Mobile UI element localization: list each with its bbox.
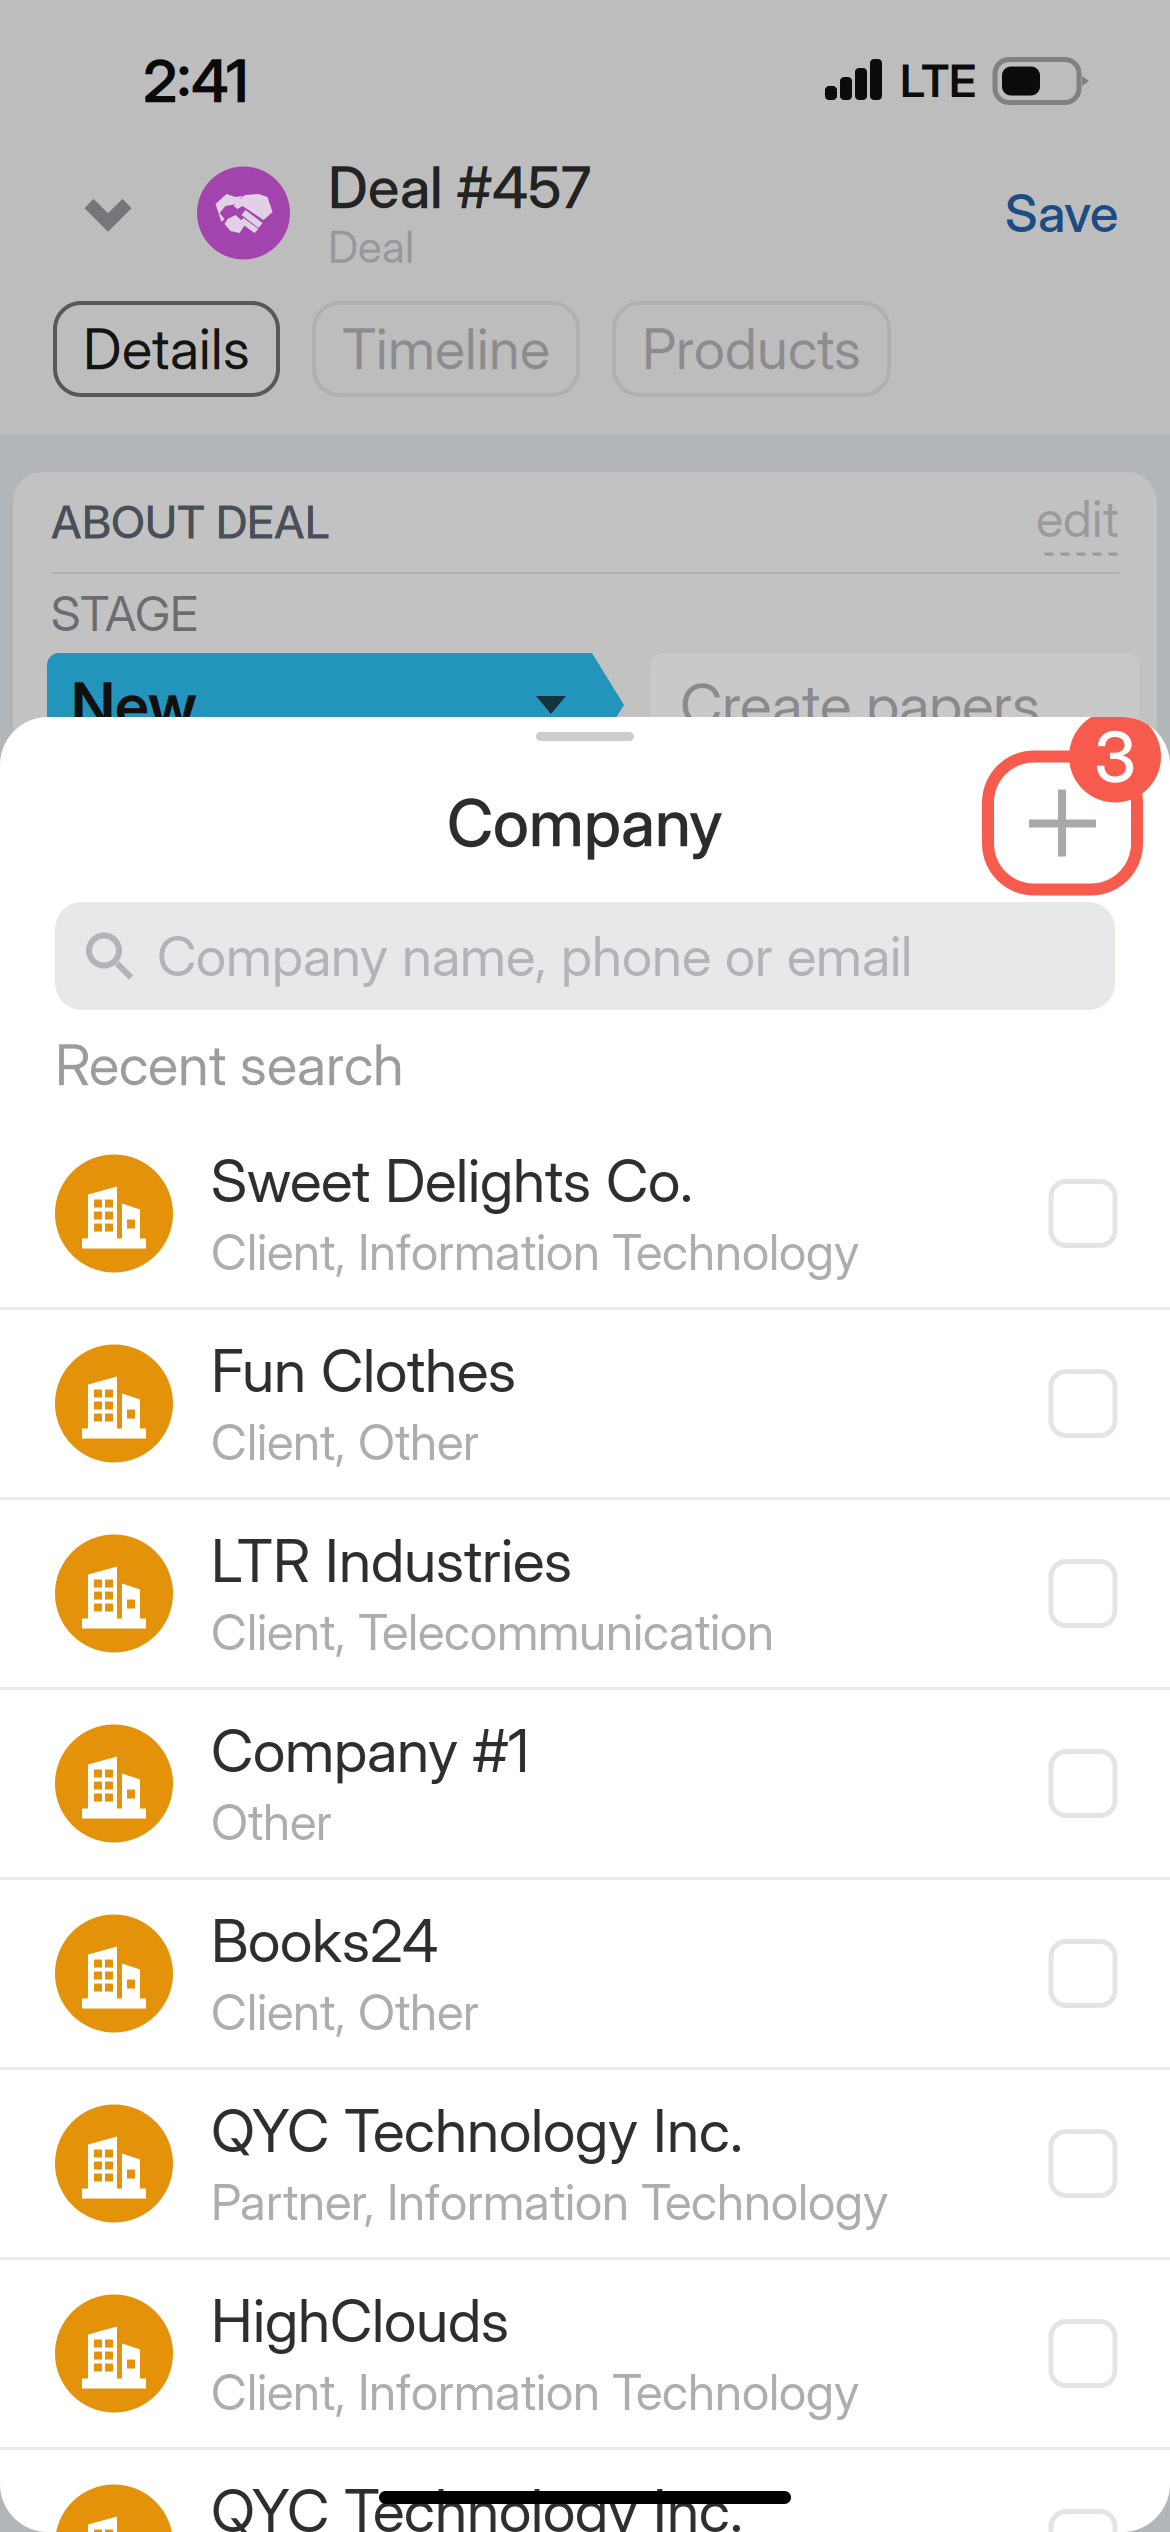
staticText: Create papers bbox=[680, 669, 1040, 740]
staticText: Books24 bbox=[211, 1905, 438, 1976]
button[interactable]: HighClouds bbox=[0, 2260, 1170, 2447]
staticText: Fun Clothes bbox=[211, 1335, 516, 1406]
staticText: Partner, Information Technology bbox=[211, 2172, 888, 2232]
staticText: Recent search bbox=[55, 1031, 404, 1099]
button[interactable]: LTR Industries bbox=[0, 1500, 1170, 1687]
staticText: Company #1 bbox=[211, 1715, 529, 1786]
staticText: LTR Industries bbox=[211, 1525, 572, 1596]
button[interactable]: Add company bbox=[982, 750, 1143, 895]
staticText: Timeline bbox=[342, 315, 550, 383]
button[interactable]: Sweet Delights Co. bbox=[0, 1120, 1170, 1307]
button[interactable]: Create papers bbox=[650, 653, 1139, 757]
staticText: QYC Technology Inc. bbox=[211, 2475, 743, 2532]
button[interactable]: Timeline bbox=[312, 301, 580, 397]
staticText: QYC Technology Inc. bbox=[211, 2095, 743, 2166]
staticText: HighClouds bbox=[211, 2285, 509, 2356]
button[interactable]: Company #1 bbox=[0, 1690, 1170, 1877]
button[interactable]: Products bbox=[612, 301, 891, 397]
staticText: Client, Information Technology bbox=[211, 2362, 859, 2422]
button[interactable]: Details bbox=[53, 301, 280, 397]
staticText: Save bbox=[1005, 181, 1118, 244]
button[interactable]: Books24 bbox=[0, 1880, 1170, 2067]
staticText: Sweet Delights Co. bbox=[211, 1145, 693, 1216]
button[interactable]: QYC Technology Inc. bbox=[0, 2450, 1170, 2532]
staticText: STAGE bbox=[51, 584, 198, 643]
button[interactable]: edit bbox=[1036, 488, 1119, 556]
button[interactable]: Collapse bbox=[0, 196, 134, 229]
button[interactable]: Company name, phone or email bbox=[55, 902, 1115, 1010]
staticText: Other bbox=[211, 1792, 332, 1852]
button[interactable]: Save bbox=[1005, 181, 1170, 244]
staticText: Client, Other bbox=[211, 1982, 479, 2042]
staticText: Client, Information Technology bbox=[211, 1222, 859, 1282]
staticText: 2:41 bbox=[143, 45, 248, 116]
staticText: Company bbox=[447, 784, 723, 862]
staticText: Products bbox=[642, 315, 861, 383]
button[interactable]: QYC Technology Inc. bbox=[0, 2070, 1170, 2257]
button[interactable]: New bbox=[47, 653, 624, 757]
staticText: LTE bbox=[900, 54, 976, 108]
button[interactable]: Fun Clothes bbox=[0, 1310, 1170, 1497]
staticText: Details bbox=[83, 315, 250, 383]
staticText: ABOUT DEAL bbox=[51, 495, 330, 549]
staticText: New bbox=[71, 668, 197, 742]
staticText: Deal bbox=[328, 220, 414, 273]
staticText: Client, Other bbox=[211, 1412, 479, 1472]
staticText: 3 bbox=[1094, 715, 1136, 798]
staticText: Company name, phone or email bbox=[157, 923, 912, 989]
staticText: edit bbox=[1036, 488, 1119, 549]
staticText: Deal #457 bbox=[328, 153, 591, 222]
staticText: Client, Telecommunication bbox=[211, 1602, 774, 1662]
